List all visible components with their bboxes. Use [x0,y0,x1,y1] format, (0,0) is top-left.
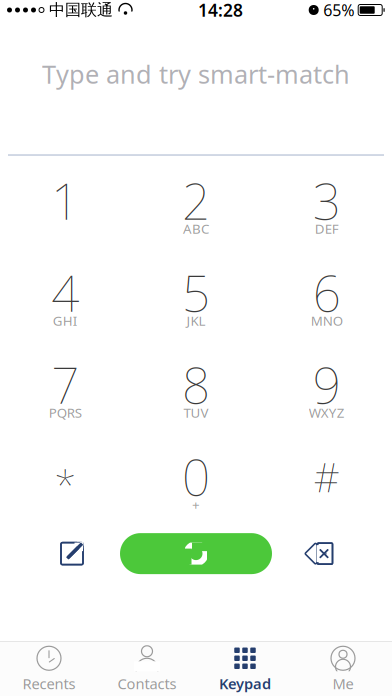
button[interactable]: 7 [0,346,131,438]
staticText: Me [332,674,353,693]
staticText: 2 [182,168,210,233]
staticText: JKL [186,312,205,329]
staticText: Type and try smart-match [42,57,350,91]
button[interactable]: Call [120,533,272,574]
staticText: DEF [315,220,339,237]
staticText: 6 [313,260,341,325]
button[interactable]: 6 [261,254,392,346]
button[interactable]: Me [294,642,392,696]
button[interactable]: Keypad [196,642,294,696]
button[interactable]: New contact [24,530,120,578]
staticText: GHI [53,312,78,329]
staticText: * [54,458,76,511]
staticText: 9 [313,352,341,417]
staticText: MNO [311,312,343,329]
button[interactable]: 4 [0,254,131,346]
staticText: 14:28 [198,0,243,21]
button[interactable]: 3 [261,162,392,254]
staticText: PQRS [49,404,82,421]
button[interactable]: Star [0,438,131,530]
button[interactable]: 2 [131,162,261,254]
staticText: ABC [183,220,209,237]
staticText: 中国联通 [49,0,113,20]
button[interactable]: 9 [261,346,392,438]
staticText: 3 [313,168,341,233]
staticText: 7 [51,352,79,417]
staticText: 5 [182,260,210,325]
staticText: Contacts [117,674,176,693]
staticText: 8 [182,352,210,417]
button[interactable]: Pound [261,438,392,530]
button[interactable]: Contacts [98,642,196,696]
button[interactable]: 0 [131,438,261,530]
staticText: Keypad [219,674,271,693]
staticText: + [192,496,200,513]
staticText: 0 [182,444,210,509]
staticText: Recents [22,674,75,693]
button[interactable]: 8 [131,346,261,438]
staticText: WXYZ [309,404,345,421]
button[interactable]: 5 [131,254,261,346]
staticText: TUV [183,404,208,421]
staticText: # [314,450,340,503]
button[interactable]: Delete [272,530,368,578]
button[interactable]: Recents [0,642,98,696]
staticText: 4 [51,260,79,325]
staticText: 1 [51,168,79,233]
staticText: 65% [323,0,354,21]
button[interactable]: 1 [0,162,131,254]
